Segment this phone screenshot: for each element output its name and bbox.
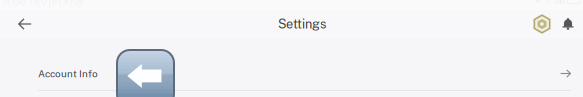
button[interactable]: Notifications <box>557 11 579 37</box>
button[interactable]: Account Info <box>0 57 583 90</box>
button[interactable]: Membership <box>530 11 554 37</box>
staticText: Settings <box>278 17 326 31</box>
button[interactable]: Back <box>8 11 42 37</box>
staticText: Account Info <box>38 68 98 79</box>
